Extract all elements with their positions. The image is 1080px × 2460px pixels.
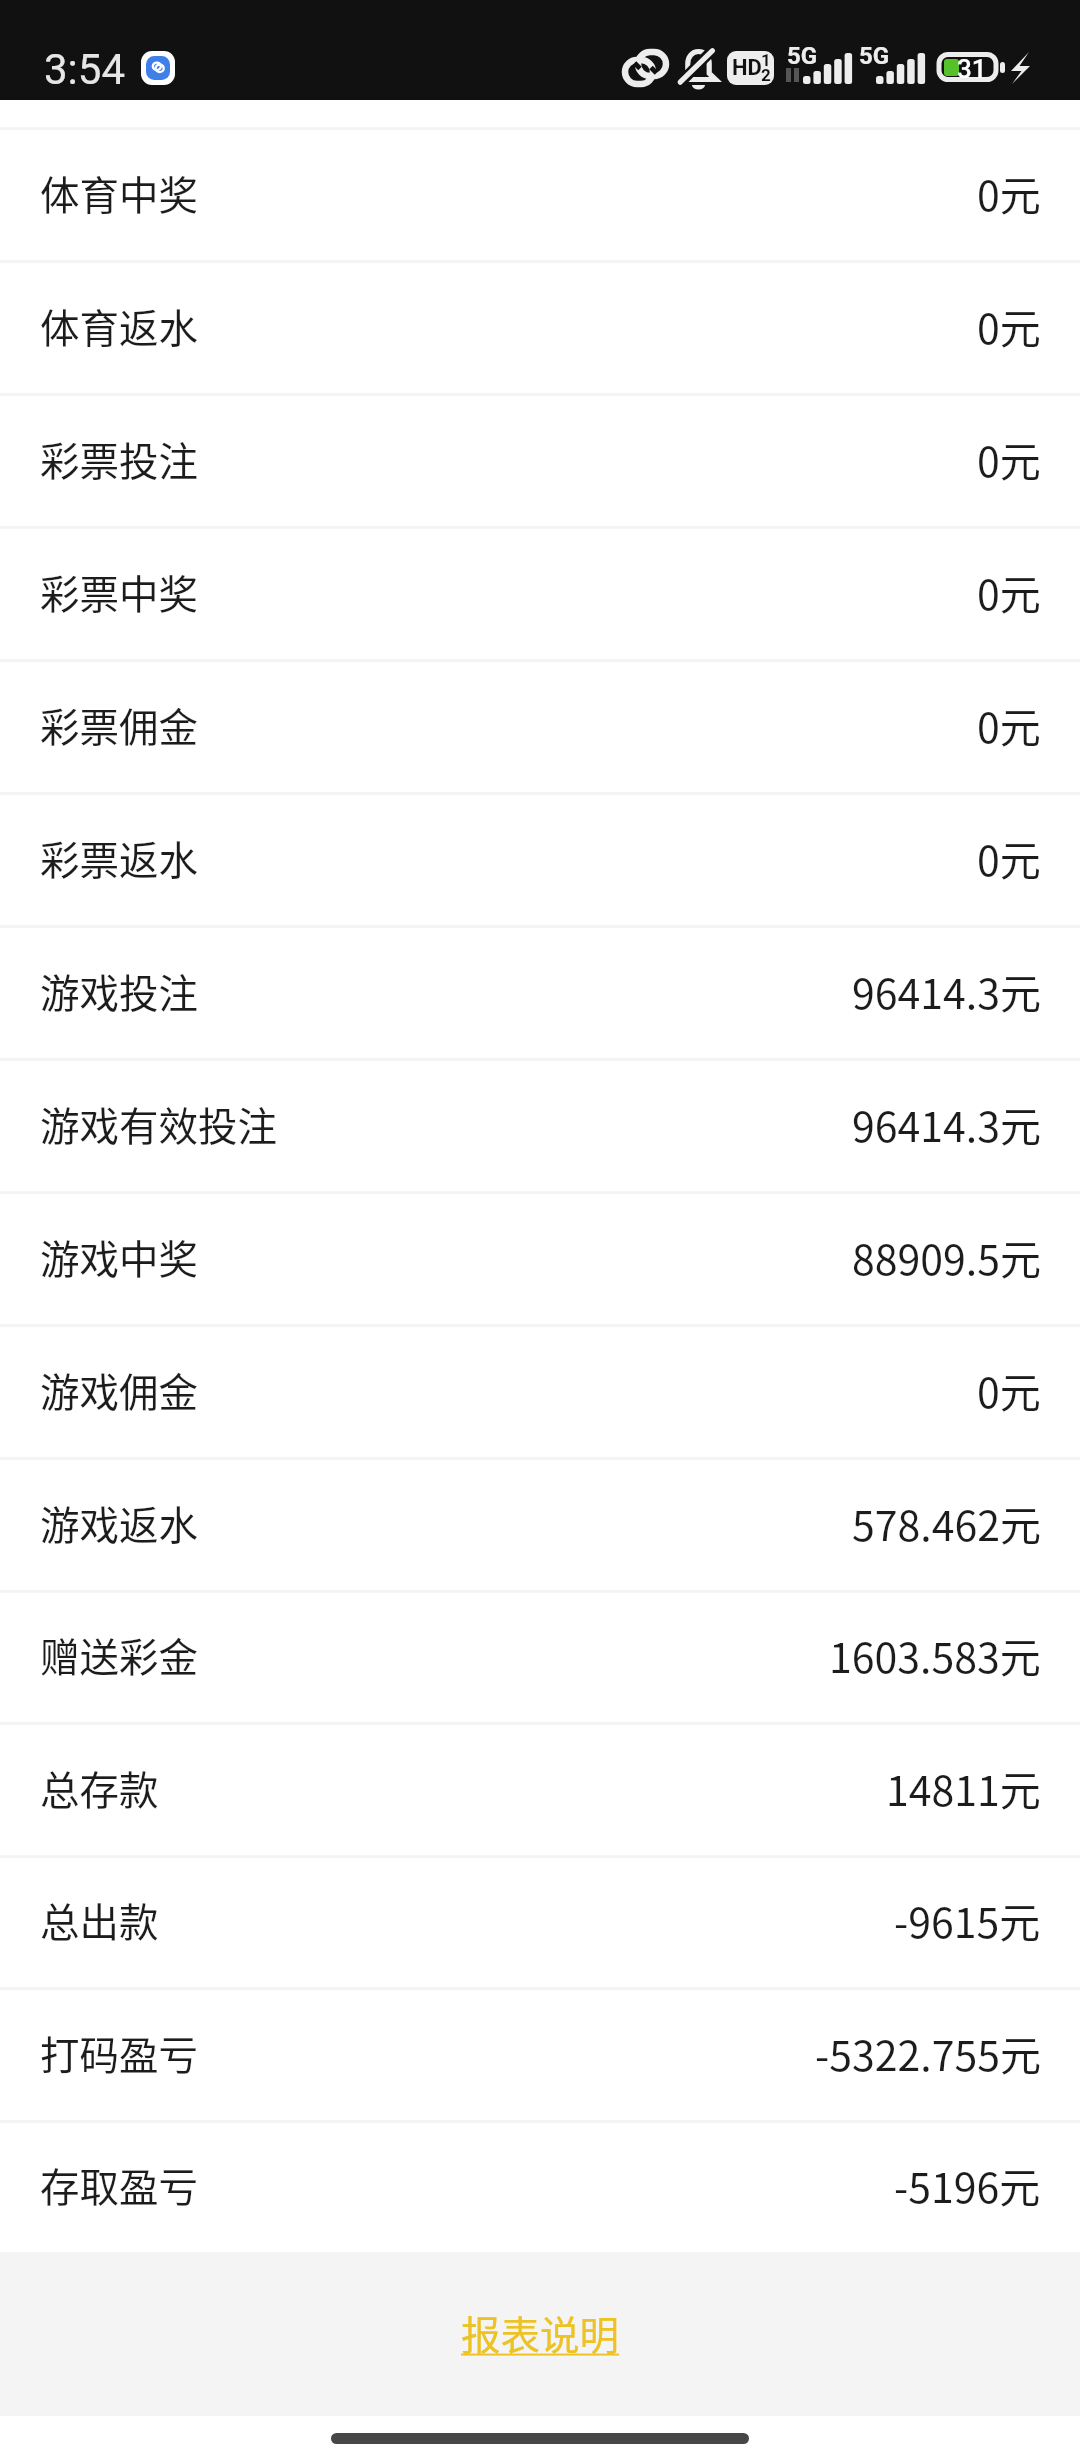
button[interactable]: 赠送彩金 xyxy=(0,1593,1080,1722)
button[interactable]: 游戏中奖 xyxy=(0,1194,1080,1324)
staticText: 存取盈亏 xyxy=(40,2156,198,2213)
staticText: 0元 xyxy=(977,296,1041,355)
button[interactable]: 游戏投注 xyxy=(0,928,1080,1058)
button[interactable]: 彩票返水 xyxy=(0,795,1080,925)
button[interactable]: 彩票投注 xyxy=(0,396,1080,526)
staticText: HD xyxy=(732,55,762,81)
button[interactable]: 彩票佣金 xyxy=(0,662,1080,792)
staticText: 0元 xyxy=(977,163,1041,222)
staticText: 5G xyxy=(859,42,890,70)
button[interactable]: 彩票中奖 xyxy=(0,529,1080,659)
staticText: 赠送彩金 xyxy=(40,1626,198,1683)
button[interactable]: 总出款 xyxy=(0,1858,1080,1987)
staticText: 游戏中奖 xyxy=(40,1228,198,1285)
staticText: 96414.3元 xyxy=(852,1094,1041,1153)
button[interactable]: 游戏有效投注 xyxy=(0,1061,1080,1191)
staticText: 14811元 xyxy=(886,1758,1041,1817)
staticText: 5G xyxy=(787,42,818,70)
other: Home gesture bar xyxy=(331,2433,749,2444)
staticText: 打码盈亏 xyxy=(40,2024,198,2081)
staticText: -9615元 xyxy=(894,1890,1041,1949)
staticText: -5322.755元 xyxy=(815,2023,1041,2082)
staticText: 彩票佣金 xyxy=(40,696,198,753)
other: Link notification xyxy=(141,51,175,85)
staticText: 0元 xyxy=(977,695,1041,754)
staticText: 0元 xyxy=(977,828,1041,887)
staticText: 体育中奖 xyxy=(40,164,198,221)
staticText: 0元 xyxy=(977,1360,1041,1419)
staticText: 2 xyxy=(761,65,771,85)
staticText: 体育返水 xyxy=(40,297,198,354)
staticText: 游戏有效投注 xyxy=(40,1095,277,1152)
staticText: 报表说明 xyxy=(461,2304,619,2361)
staticText: 游戏投注 xyxy=(40,962,198,1019)
staticText: 彩票返水 xyxy=(40,829,198,886)
button[interactable]: 总存款 xyxy=(0,1725,1080,1855)
staticText: 总出款 xyxy=(40,1891,159,1948)
button[interactable]: 游戏佣金 xyxy=(0,1327,1080,1457)
staticText: 游戏佣金 xyxy=(40,1361,198,1418)
button[interactable]: 报表说明 xyxy=(461,2304,619,2361)
staticText: 1 xyxy=(761,50,771,70)
staticText: 96414.3元 xyxy=(852,961,1041,1020)
button[interactable]: 体育返水 xyxy=(0,263,1080,393)
staticText: 578.462元 xyxy=(852,1493,1041,1552)
staticText: 彩票投注 xyxy=(40,430,198,487)
button[interactable]: 游戏返水 xyxy=(0,1460,1080,1590)
staticText: 游戏返水 xyxy=(40,1494,198,1551)
staticText: 彩票中奖 xyxy=(40,563,198,620)
staticText: 0元 xyxy=(977,429,1041,488)
staticText: -5196元 xyxy=(894,2155,1041,2214)
staticText: 3:54 xyxy=(44,45,125,94)
staticText: 0元 xyxy=(977,562,1041,621)
staticText: 31 xyxy=(957,54,987,84)
button[interactable]: 存取盈亏 xyxy=(0,2123,1080,2252)
staticText: 1603.583元 xyxy=(829,1625,1041,1684)
staticText: 88909.5元 xyxy=(852,1227,1041,1286)
staticText: 总存款 xyxy=(40,1759,159,1816)
button[interactable]: 打码盈亏 xyxy=(0,1990,1080,2120)
button[interactable]: 体育中奖 xyxy=(0,130,1080,260)
